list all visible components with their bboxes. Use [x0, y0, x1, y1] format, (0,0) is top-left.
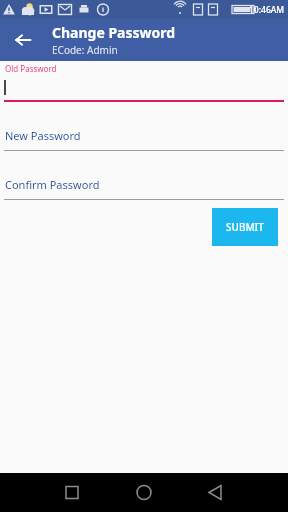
- staticText: ECode: Admin: [52, 43, 118, 57]
- button[interactable]: SUBMIT: [212, 208, 278, 246]
- staticText: 10:46AM: [249, 4, 285, 16]
- button[interactable]: Back: [8, 25, 38, 55]
- staticText: SUBMIT: [226, 220, 264, 234]
- button[interactable]: New Password: [0, 128, 288, 151]
- staticText: Confirm Password: [5, 177, 100, 192]
- staticText: New Password: [5, 128, 81, 143]
- button[interactable]: [0, 74, 288, 100]
- button[interactable]: Confirm Password: [0, 177, 288, 200]
- staticText: Change Password: [52, 23, 176, 42]
- staticText: Old Password: [5, 63, 57, 74]
